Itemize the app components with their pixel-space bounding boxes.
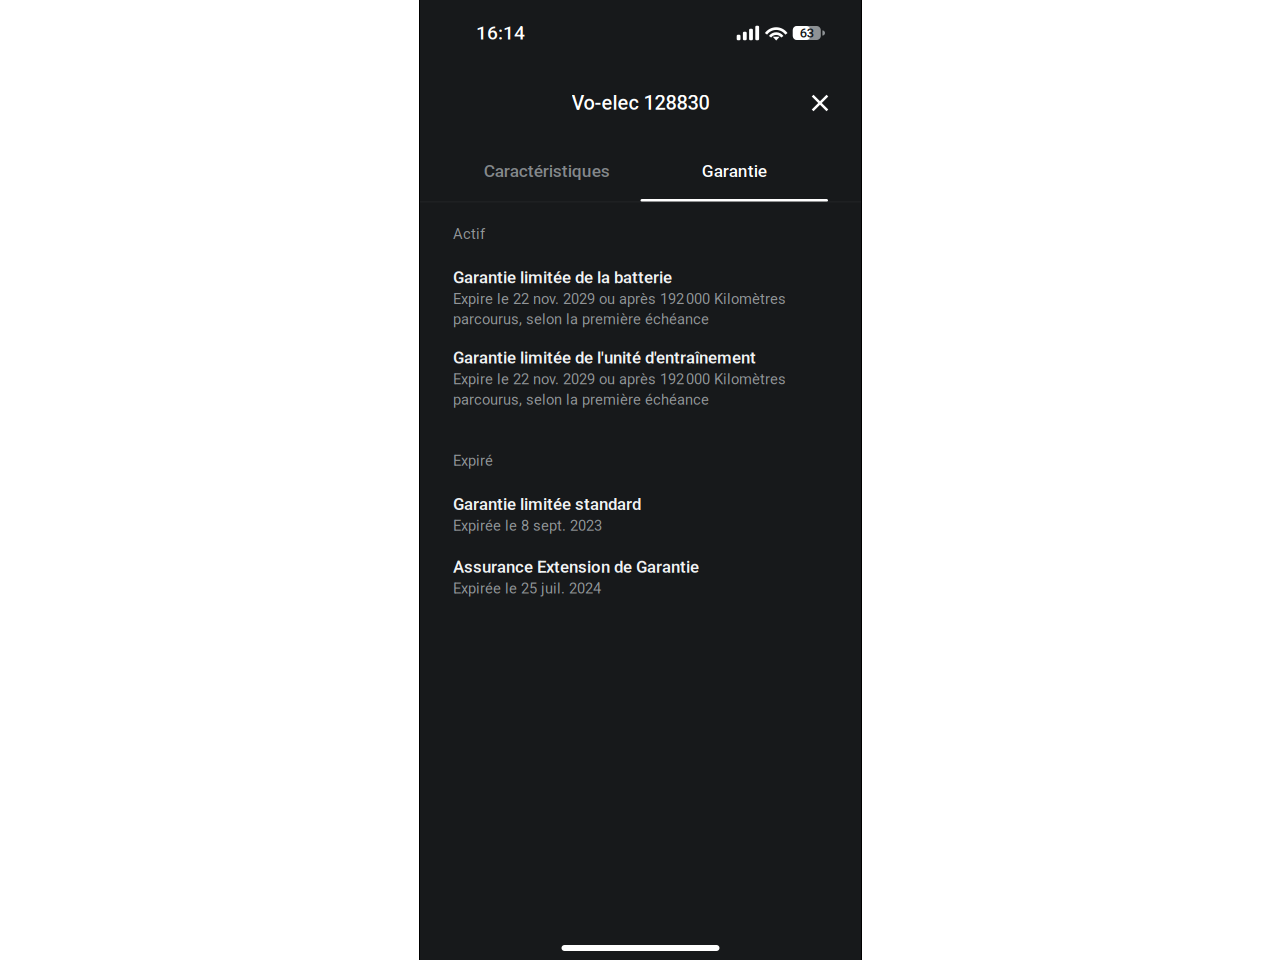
button[interactable]: Fermer [798, 81, 842, 125]
staticText: Expirée le 8 sept. 2023 [453, 517, 602, 534]
staticText: Expirée le 25 juil. 2024 [453, 580, 601, 597]
staticText: Vo-elec 128830 [571, 91, 709, 115]
button[interactable]: Garantie limitée de l'unité d'entraîneme… [453, 348, 828, 408]
button[interactable]: Garantie limitée de la batterie [453, 268, 828, 328]
staticText: Expire le 22 nov. 2029 ou après 192 000 … [453, 371, 786, 408]
staticText: 16:14 [476, 22, 525, 44]
staticText: Garantie limitée standard [453, 494, 641, 514]
staticText: Actif [453, 225, 485, 243]
staticText: Expire le 22 nov. 2029 ou après 192 000 … [453, 290, 786, 328]
staticText: Garantie limitée de la batterie [453, 268, 672, 287]
button[interactable]: Assurance Extension de Garantie [453, 557, 828, 597]
button[interactable]: Garantie [640, 140, 828, 202]
staticText: Garantie [702, 161, 767, 181]
button[interactable]: Garantie limitée standard [453, 494, 828, 534]
staticText: Garantie limitée de l'unité d'entraîneme… [453, 348, 756, 368]
staticText: 63 [800, 25, 814, 41]
button[interactable]: Caractéristiques [453, 140, 640, 202]
staticText: Expiré [453, 452, 493, 469]
staticText: Caractéristiques [484, 161, 610, 181]
staticText: Assurance Extension de Garantie [453, 557, 699, 577]
